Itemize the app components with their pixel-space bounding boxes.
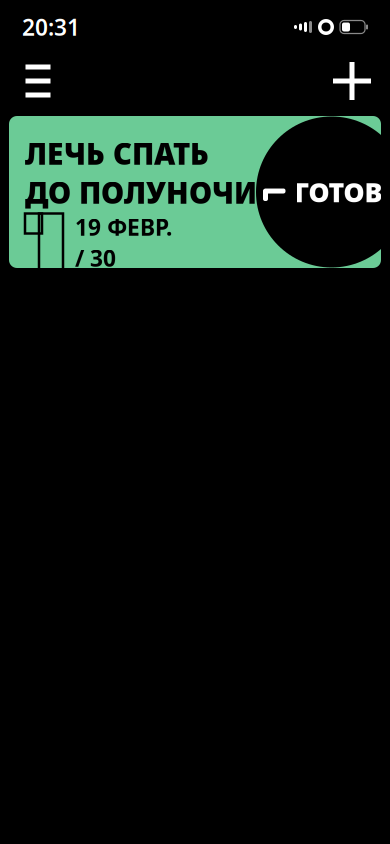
staticText: ГОТОВО	[294, 174, 390, 210]
staticText: / 30	[75, 243, 116, 273]
staticText: ДО ПОЛУНОЧИ	[25, 173, 257, 212]
staticText: ЛЕЧЬ СПАТЬ	[25, 134, 209, 173]
staticText: 19 ФЕВР.	[75, 212, 172, 242]
button[interactable]: Add habit	[326, 55, 378, 107]
button[interactable]: ГОТОВО	[0, 108, 390, 268]
staticText: 20:31	[22, 12, 80, 42]
button[interactable]: Menu	[12, 55, 64, 107]
